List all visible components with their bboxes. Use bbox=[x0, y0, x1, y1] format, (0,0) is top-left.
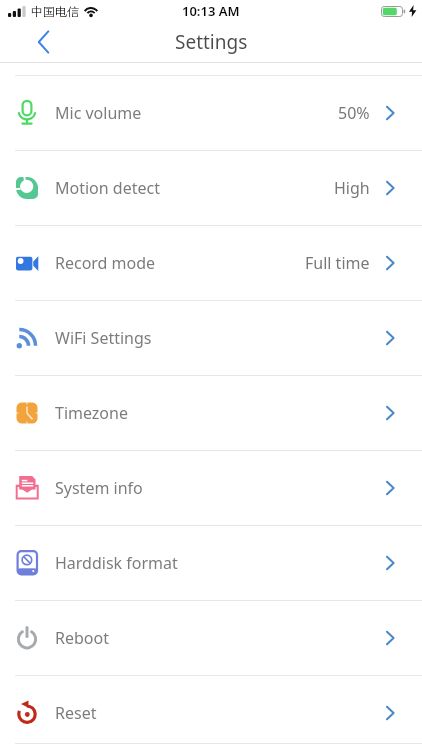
button[interactable]: Harddisk format bbox=[0, 525, 422, 600]
button[interactable]: Timezone bbox=[0, 375, 422, 450]
button[interactable]: Motion detect bbox=[0, 150, 422, 225]
staticText: Harddisk format bbox=[55, 552, 178, 574]
button[interactable]: System info bbox=[0, 450, 422, 525]
button[interactable]: Record mode bbox=[0, 225, 422, 300]
staticText: Reset bbox=[55, 702, 97, 724]
button[interactable]: Reboot bbox=[0, 600, 422, 675]
staticText: 中国电信 bbox=[31, 4, 79, 19]
staticText: System info bbox=[55, 477, 143, 499]
staticText: 10:13 AM bbox=[182, 2, 240, 20]
button[interactable]: Mic volume bbox=[0, 75, 422, 150]
staticText: Reboot bbox=[55, 627, 109, 649]
staticText: High bbox=[334, 177, 370, 199]
button[interactable]: WiFi Settings bbox=[0, 300, 422, 375]
staticText: WiFi Settings bbox=[55, 327, 152, 349]
staticText: Record mode bbox=[55, 252, 156, 274]
staticText: Motion detect bbox=[55, 177, 160, 199]
staticText: Timezone bbox=[55, 402, 128, 424]
staticText: Full time bbox=[305, 252, 370, 274]
button[interactable] bbox=[28, 27, 58, 57]
button[interactable]: Reset bbox=[0, 675, 422, 750]
staticText: 50% bbox=[338, 102, 370, 124]
staticText: Settings bbox=[175, 29, 248, 55]
staticText: Mic volume bbox=[55, 102, 142, 124]
